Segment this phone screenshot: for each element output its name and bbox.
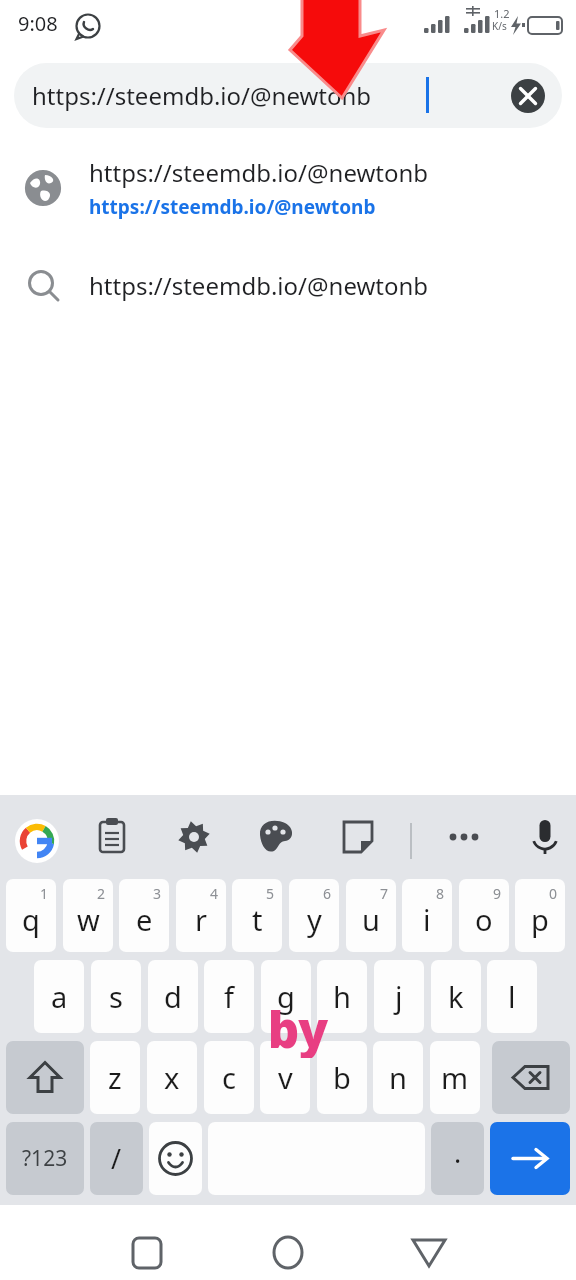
button[interactable]: Themes <box>254 815 298 859</box>
staticText: 2 <box>97 884 106 903</box>
staticText: n <box>389 1058 407 1097</box>
button[interactable]: Google <box>15 819 59 863</box>
staticText: 9:08 <box>18 10 58 37</box>
staticText: x <box>164 1058 180 1097</box>
staticText: v <box>278 1058 293 1097</box>
staticText: K/s <box>492 19 507 33</box>
staticText: m <box>441 1058 469 1097</box>
button[interactable]: Home <box>253 1217 323 1280</box>
button[interactable]: f <box>204 960 254 1033</box>
button[interactable]: d <box>148 960 198 1033</box>
staticText: 6 <box>323 884 332 903</box>
button[interactable]: Backspace <box>492 1041 570 1114</box>
button[interactable]: i <box>402 879 452 952</box>
staticText: b <box>333 1058 351 1097</box>
staticText: t <box>252 900 263 939</box>
button[interactable]: y <box>289 879 339 952</box>
button[interactable]: https://steemdb.io/@newtonb <box>14 63 562 128</box>
button[interactable]: j <box>374 960 424 1033</box>
staticText: k <box>448 977 464 1016</box>
staticText: s <box>109 977 123 1016</box>
button[interactable]: z <box>90 1041 140 1114</box>
button[interactable]: g <box>261 960 311 1033</box>
staticText: . <box>454 1134 462 1171</box>
staticText: 0 <box>549 884 558 903</box>
button[interactable]: Stickers <box>336 815 380 859</box>
staticText: ?123 <box>22 1144 68 1173</box>
staticText: e <box>136 900 153 939</box>
staticText: j <box>395 977 403 1016</box>
staticText: https://steemdb.io/@newtonb <box>89 269 429 302</box>
staticText: 3 <box>153 884 162 903</box>
staticText: 4 <box>210 884 219 903</box>
staticText: / <box>111 1140 122 1177</box>
staticText: https://steemdb.io/@newtonb <box>32 79 372 112</box>
button[interactable]: s <box>91 960 141 1033</box>
staticText: l <box>508 977 516 1016</box>
staticText: w <box>77 900 100 939</box>
button[interactable]: w <box>63 879 113 952</box>
button[interactable]: r <box>176 879 226 952</box>
staticText: f <box>224 977 234 1016</box>
button[interactable]: a <box>34 960 84 1033</box>
staticText: z <box>108 1058 122 1097</box>
staticText: h <box>333 977 351 1016</box>
button[interactable]: Go <box>490 1122 570 1195</box>
button[interactable]: l <box>487 960 537 1033</box>
button[interactable]: e <box>119 879 169 952</box>
staticText: y <box>307 900 322 939</box>
button[interactable]: Shift <box>6 1041 84 1114</box>
staticText: o <box>475 900 493 939</box>
button[interactable]: Clipboard <box>90 815 134 859</box>
staticText: p <box>531 900 549 939</box>
button[interactable]: https://steemdb.io/@newtonb <box>0 252 576 318</box>
staticText: i <box>423 900 431 939</box>
button[interactable]: x <box>147 1041 197 1114</box>
button[interactable]: b <box>317 1041 367 1114</box>
staticText: q <box>22 900 40 939</box>
button[interactable]: m <box>430 1041 480 1114</box>
staticText: g <box>277 977 295 1016</box>
staticText: c <box>222 1058 236 1097</box>
button[interactable]: More options <box>442 815 486 859</box>
button[interactable]: c <box>204 1041 254 1114</box>
button[interactable]: Settings <box>172 815 216 859</box>
button[interactable]: Voice input <box>523 815 567 859</box>
button[interactable]: . <box>431 1122 484 1195</box>
button[interactable]: / <box>90 1122 143 1195</box>
staticText: 5 <box>266 884 275 903</box>
button[interactable]: Recent apps <box>112 1217 182 1280</box>
button[interactable]: h <box>317 960 367 1033</box>
button[interactable]: ?123 <box>6 1122 84 1195</box>
staticText: by @newtonb <box>130 996 466 1058</box>
button[interactable]: t <box>232 879 282 952</box>
button[interactable]: u <box>346 879 396 952</box>
staticText: 9 <box>493 884 502 903</box>
button[interactable]: q <box>6 879 56 952</box>
staticText: d <box>164 977 182 1016</box>
button[interactable]: p <box>515 879 565 952</box>
button[interactable]: v <box>260 1041 310 1114</box>
staticText: 1.2 <box>494 6 510 21</box>
staticText: u <box>362 900 380 939</box>
button[interactable]: k <box>431 960 481 1033</box>
staticText: https://steemdb.io/@newtonb <box>89 156 429 189</box>
button[interactable]: n <box>373 1041 423 1114</box>
staticText: 7 <box>380 884 389 903</box>
staticText: 1 <box>40 884 49 903</box>
staticText: r <box>195 900 207 939</box>
button[interactable]: o <box>459 879 509 952</box>
button[interactable]: Clear text <box>511 79 545 113</box>
button[interactable]: https://steemdb.io/@newtonb <box>0 148 576 232</box>
button[interactable]: Emoji <box>149 1122 202 1195</box>
staticText: 8 <box>436 884 445 903</box>
staticText: https://steemdb.io/@newtonb <box>89 194 376 220</box>
staticText: a <box>51 977 68 1016</box>
button[interactable]: Back <box>394 1217 464 1280</box>
